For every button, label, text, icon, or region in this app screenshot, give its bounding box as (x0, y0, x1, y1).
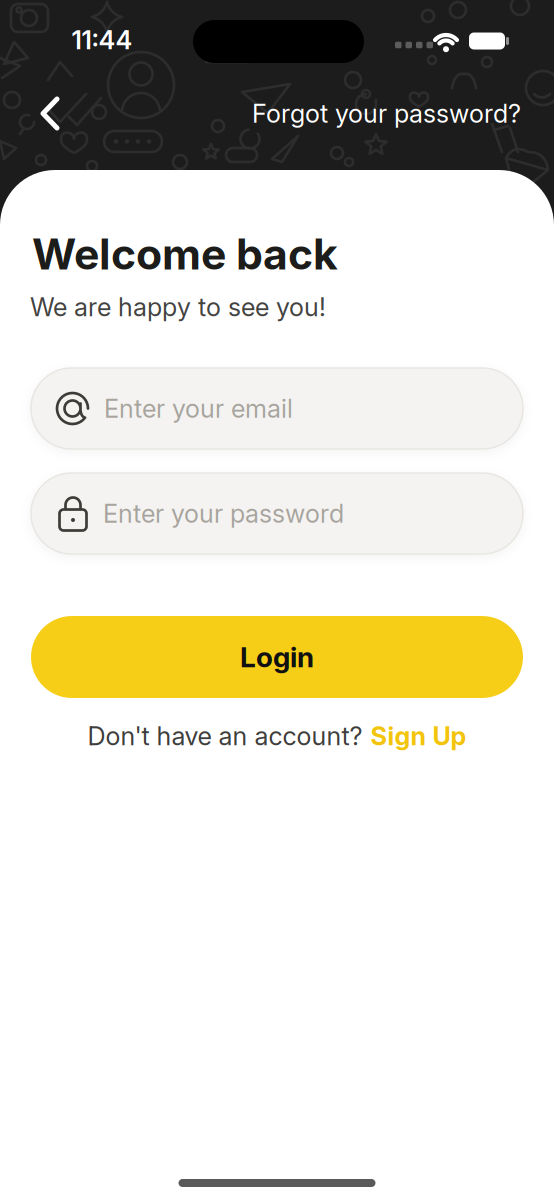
button[interactable]: Back (29, 91, 71, 136)
button[interactable]: Forgot your password? (252, 99, 521, 128)
staticText: Enter your password (103, 499, 344, 528)
staticText: 11:44 (71, 25, 132, 55)
staticText: Don't have an account? (87, 721, 362, 751)
staticText: Sign Up (370, 721, 466, 751)
button[interactable]: Sign Up (370, 721, 466, 751)
staticText: We are happy to see you! (30, 292, 326, 322)
staticText: Forgot your password? (252, 99, 521, 128)
staticText: Welcome back (32, 229, 338, 279)
button[interactable]: Login (31, 616, 523, 698)
button[interactable]: Enter your email (31, 368, 523, 449)
staticText: Login (240, 640, 314, 673)
button[interactable]: Enter your password (31, 473, 523, 554)
staticText: Enter your email (104, 394, 293, 423)
